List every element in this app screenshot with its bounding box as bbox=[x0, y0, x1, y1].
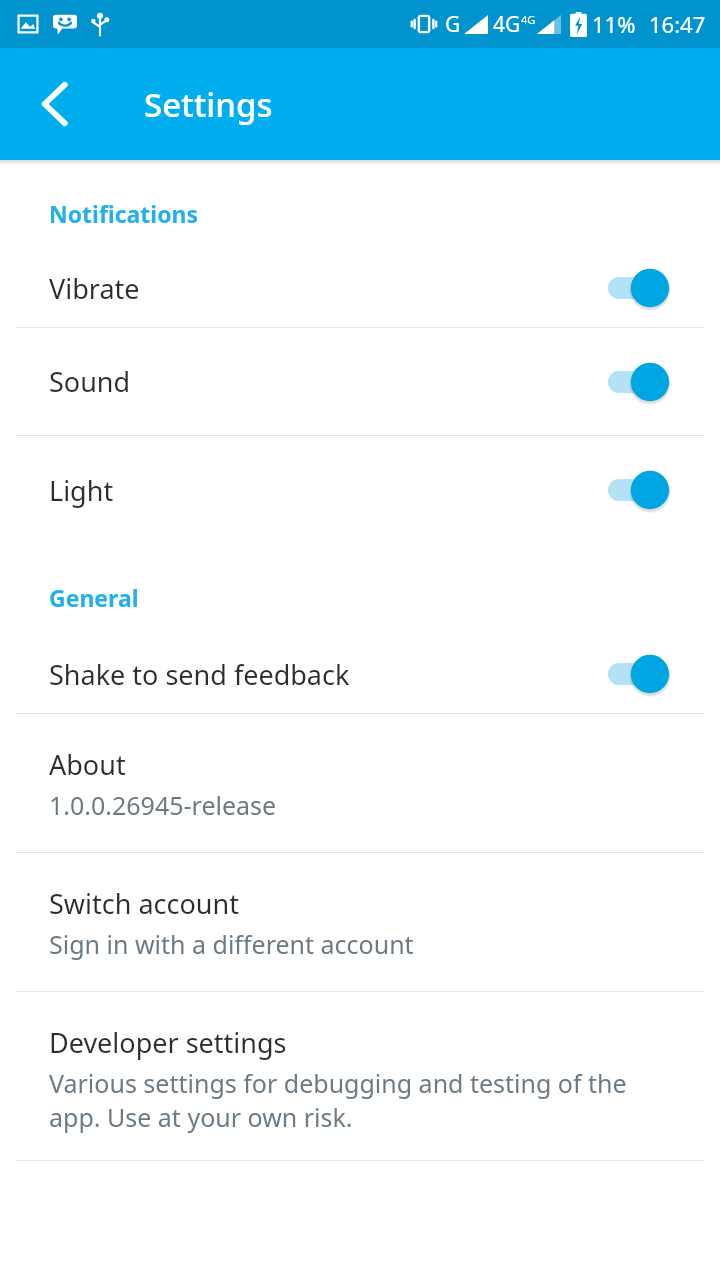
staticText: General bbox=[49, 582, 139, 613]
button[interactable]: Developer settings bbox=[0, 992, 720, 1160]
staticText: Notifications bbox=[49, 198, 199, 229]
staticText: 1.0.0.26945-release bbox=[49, 788, 277, 822]
staticText: Sound bbox=[49, 363, 131, 400]
button[interactable]: About bbox=[0, 714, 720, 852]
staticText: Light bbox=[49, 472, 114, 509]
staticText: Switch account bbox=[49, 885, 239, 922]
button[interactable]: Back bbox=[22, 71, 88, 137]
staticText: Settings bbox=[144, 82, 273, 127]
staticText: 16:47 bbox=[649, 9, 706, 39]
staticText: Sign in with a different account bbox=[49, 927, 414, 961]
staticText: Developer settings bbox=[49, 1024, 287, 1061]
button[interactable]: Switch account bbox=[0, 853, 720, 991]
staticText: 4G bbox=[521, 12, 536, 27]
button[interactable]: Shake to send feedback bbox=[0, 635, 720, 713]
staticText: G bbox=[445, 10, 461, 39]
staticText: 11% bbox=[592, 9, 636, 39]
staticText: 4G bbox=[493, 10, 521, 39]
button[interactable]: Vibrate bbox=[0, 249, 720, 327]
staticText: Shake to send feedback bbox=[49, 656, 350, 693]
staticText: Vibrate bbox=[49, 270, 140, 307]
staticText: About bbox=[49, 746, 126, 783]
button[interactable]: Sound bbox=[0, 328, 720, 435]
staticText: Various settings for debugging and testi… bbox=[49, 1066, 627, 1134]
button[interactable]: Light bbox=[0, 436, 720, 544]
